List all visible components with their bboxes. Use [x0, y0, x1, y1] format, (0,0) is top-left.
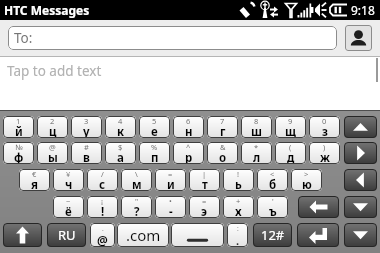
- button[interactable]: @: [37, 142, 68, 164]
- button[interactable]: RU: [47, 223, 86, 247]
- staticText: ~: [66, 196, 71, 206]
- staticText: ¡: [101, 196, 104, 206]
- staticText: 2: [50, 116, 55, 126]
- button[interactable]: (: [275, 142, 306, 164]
- staticText: Tap to add text: [7, 62, 102, 80]
- staticText: ч: [65, 177, 73, 191]
- staticText: а: [117, 150, 124, 164]
- button[interactable]: Down: [344, 196, 377, 218]
- staticText: э: [201, 204, 208, 218]
- button[interactable]: :: [227, 223, 248, 247]
- button[interactable]: Down: [344, 223, 377, 247]
- button[interactable]: 7: [207, 116, 238, 138]
- staticText: 9: [288, 116, 293, 126]
- staticText: м: [132, 177, 142, 191]
- button[interactable]: •: [155, 196, 186, 218]
- button[interactable]: ¡: [87, 196, 118, 218]
- staticText: !: [237, 169, 240, 179]
- staticText: ы: [48, 150, 58, 164]
- staticText: ): [323, 142, 326, 152]
- staticText: HTC Messages: [4, 2, 90, 18]
- staticText: 5: [152, 116, 157, 126]
- staticText: 6: [186, 116, 191, 126]
- staticText: ж: [320, 150, 330, 164]
- button[interactable]: 12#: [253, 223, 292, 247]
- button[interactable]: *: [241, 142, 272, 164]
- button[interactable]: +: [223, 196, 254, 218]
- staticText: %: [151, 142, 158, 152]
- staticText: /: [101, 169, 104, 179]
- button[interactable]: \: [121, 169, 152, 191]
- button[interactable]: Shift: [3, 223, 42, 247]
- button[interactable]: Backspace: [298, 196, 339, 218]
- staticText: ф: [14, 150, 24, 164]
- button[interactable]: 4: [105, 116, 136, 138]
- staticText: с: [99, 177, 106, 191]
- staticText: 9:18: [351, 2, 375, 18]
- button[interactable]: =: [189, 196, 220, 218]
- button[interactable]: Left: [344, 169, 377, 191]
- button[interactable]: <: [257, 169, 288, 191]
- button[interactable]: №: [3, 142, 34, 164]
- button[interactable]: Pick contact: [345, 25, 372, 51]
- staticText: х: [235, 204, 242, 218]
- staticText: ^: [186, 142, 191, 152]
- button[interactable]: ^: [173, 142, 204, 164]
- button[interactable]: Enter: [297, 223, 339, 247]
- staticText: &: [220, 142, 226, 152]
- button[interactable]: 5: [139, 116, 170, 138]
- button[interactable]: !: [223, 169, 254, 191]
- staticText: !: [101, 204, 105, 218]
- button[interactable]: .com: [117, 223, 169, 247]
- staticText: д: [287, 150, 295, 164]
- button[interactable]: 1: [3, 116, 34, 138]
- staticText: .com: [126, 225, 161, 245]
- button[interactable]: =: [155, 169, 186, 191]
- button[interactable]: Space: [171, 223, 224, 247]
- button[interactable]: 6: [173, 116, 204, 138]
- staticText: ¥: [66, 169, 71, 179]
- button[interactable]: 8: [241, 116, 272, 138]
- staticText: |: [202, 169, 207, 179]
- staticText: з: [322, 124, 328, 138]
- staticText: RU: [58, 226, 76, 244]
- button[interactable]: .: [90, 223, 115, 247]
- staticText: г: [220, 124, 226, 138]
- staticText: ъ: [269, 204, 277, 218]
- button[interactable]: #: [71, 142, 102, 164]
- button[interactable]: ~: [53, 196, 84, 218]
- staticText: ?: [134, 204, 140, 218]
- button[interactable]: 3: [71, 116, 102, 138]
- button[interactable]: ': [257, 196, 288, 218]
- button[interactable]: ): [309, 142, 340, 164]
- button[interactable]: /: [87, 169, 118, 191]
- staticText: щ: [285, 124, 296, 138]
- staticText: €: [32, 169, 37, 179]
- button[interactable]: To:: [8, 26, 337, 50]
- button[interactable]: $: [105, 142, 136, 164]
- staticText: ц: [49, 124, 57, 138]
- staticText: у: [83, 124, 90, 138]
- staticText: :: [237, 224, 239, 233]
- staticText: в: [83, 150, 90, 164]
- staticText: -: [169, 204, 173, 218]
- button[interactable]: €: [19, 169, 50, 191]
- staticText: 7: [220, 116, 225, 126]
- button[interactable]: %: [139, 142, 170, 164]
- staticText: @: [49, 142, 56, 152]
- staticText: о: [219, 150, 227, 164]
- staticText: (: [289, 142, 292, 152]
- button[interactable]: Right: [344, 142, 377, 164]
- button[interactable]: |: [189, 169, 220, 191]
- button[interactable]: 9: [275, 116, 306, 138]
- button[interactable]: ¥: [53, 169, 84, 191]
- button[interactable]: >: [291, 169, 322, 191]
- staticText: 12#: [261, 226, 285, 244]
- button[interactable]: 0: [309, 116, 340, 138]
- button[interactable]: ": [121, 196, 152, 218]
- button[interactable]: Up: [344, 116, 377, 138]
- staticText: я: [31, 177, 38, 191]
- button[interactable]: &: [207, 142, 238, 164]
- staticText: ё: [65, 204, 72, 218]
- button[interactable]: 2: [37, 116, 68, 138]
